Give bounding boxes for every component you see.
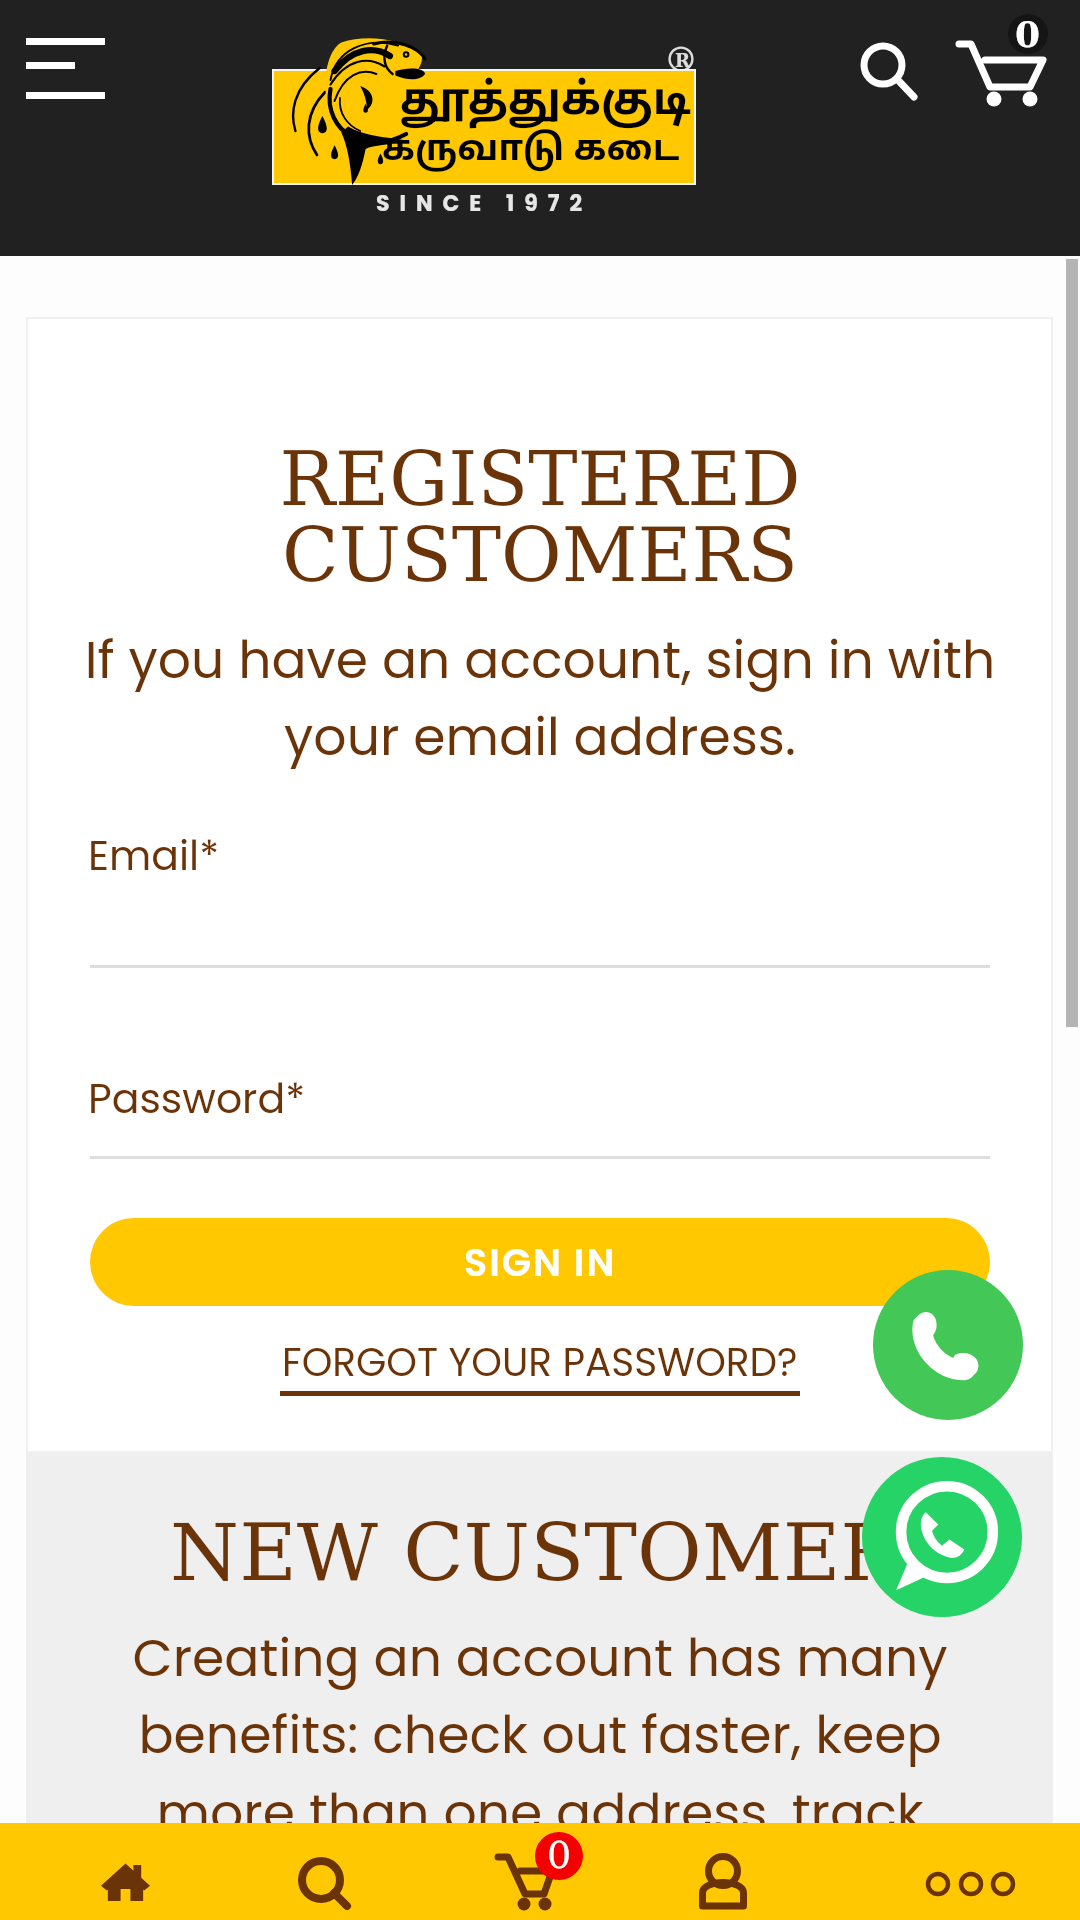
- staticText: Password*: [88, 1070, 306, 1127]
- staticText: REGISTERED CUSTOMERS: [27, 436, 1053, 598]
- button[interactable]: Search: [828, 10, 938, 120]
- staticText: If you have an account, sign in with you…: [62, 623, 1018, 773]
- button[interactable]: Menu: [2, 14, 114, 126]
- button[interactable]: Cart: [432, 1823, 648, 1920]
- button[interactable]: Email*: [88, 820, 990, 970]
- button[interactable]: Search: [216, 1823, 432, 1920]
- staticText: 0: [1015, 14, 1041, 53]
- button[interactable]: FORGOT YOUR PASSWORD?: [27, 1330, 1053, 1412]
- staticText: Email*: [88, 827, 220, 884]
- button[interactable]: Password*: [88, 1063, 990, 1162]
- staticText: கருவாடு கடை: [382, 129, 680, 174]
- staticText: SINCE 1972: [274, 188, 694, 219]
- staticText: Creating an account has many benefits: c…: [110, 1621, 970, 1849]
- staticText: NEW CUSTOMERS: [49, 1507, 1075, 1599]
- staticText: 0: [547, 1833, 572, 1877]
- button[interactable]: WhatsApp: [862, 1457, 1022, 1617]
- staticText: FORGOT YOUR PASSWORD?: [282, 1335, 798, 1390]
- button[interactable]: Cart: [944, 12, 1054, 122]
- button[interactable]: Account: [648, 1823, 864, 1920]
- button[interactable]: Call: [873, 1270, 1023, 1420]
- button[interactable]: Home: [0, 1823, 216, 1920]
- button[interactable]: More: [864, 1823, 1080, 1920]
- staticText: R: [675, 50, 690, 71]
- staticText: SIGN IN: [464, 1236, 617, 1289]
- staticText: தூத்துக்குடி: [400, 76, 692, 131]
- button[interactable]: SIGN IN: [90, 1218, 990, 1306]
